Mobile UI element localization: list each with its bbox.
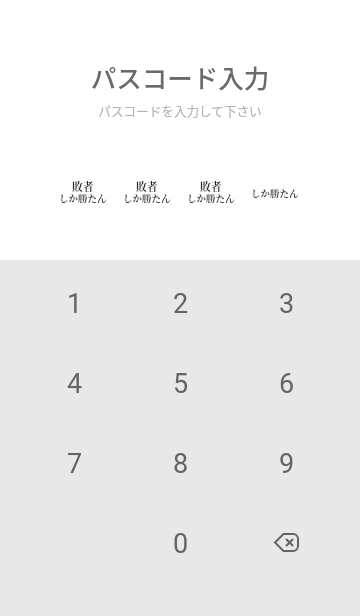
button[interactable]: 3 <box>234 264 340 344</box>
button[interactable]: 5 <box>128 344 234 424</box>
staticText: 7 <box>67 448 83 480</box>
staticText: パスコードを入力して下さい <box>0 101 360 119</box>
staticText: 5 <box>173 368 189 400</box>
staticText: しか勝たん <box>59 191 107 205</box>
button[interactable]: 2 <box>128 264 234 344</box>
staticText: 敗者 <box>136 179 158 195</box>
staticText: 0 <box>173 528 189 560</box>
staticText: しか勝たん <box>123 191 171 205</box>
staticText: しか勝たん <box>187 191 235 205</box>
staticText: パスコード入力 <box>0 58 360 95</box>
staticText: 4 <box>67 368 83 400</box>
button[interactable]: 0 <box>128 504 234 584</box>
button[interactable]: 7 <box>22 424 128 504</box>
button[interactable]: 9 <box>234 424 340 504</box>
staticText: 9 <box>279 448 295 480</box>
staticText: 1 <box>67 288 83 320</box>
button[interactable]: 1 <box>22 264 128 344</box>
staticText: 6 <box>279 368 295 400</box>
button[interactable]: 4 <box>22 344 128 424</box>
button[interactable]: 6 <box>234 344 340 424</box>
button[interactable]: 8 <box>128 424 234 504</box>
staticText: 敗者 <box>72 179 94 195</box>
staticText: 8 <box>173 448 189 480</box>
staticText: 3 <box>279 288 295 320</box>
staticText: 2 <box>173 288 189 320</box>
staticText: 敗者 <box>200 179 222 195</box>
button[interactable]: Delete <box>234 504 340 584</box>
staticText: しか勝たん <box>251 186 299 200</box>
